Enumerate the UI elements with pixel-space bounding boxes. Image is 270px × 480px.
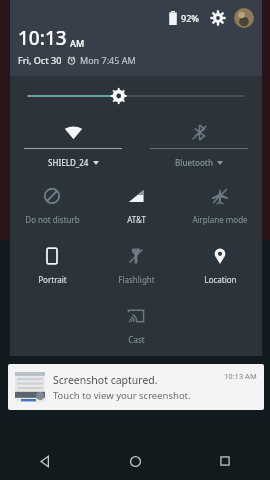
- button[interactable]: Back: [0, 442, 90, 480]
- staticText: Cast: [128, 334, 145, 345]
- button[interactable]: User profile: [234, 8, 254, 28]
- button[interactable]: Brightness: [10, 76, 262, 116]
- staticText: Mon 7:45 AM: [80, 54, 136, 66]
- button[interactable]: Recent apps: [180, 442, 270, 480]
- button[interactable]: Location: [178, 236, 262, 296]
- button[interactable]: AT&T: [94, 176, 178, 236]
- staticText: Do not disturb: [25, 214, 80, 225]
- staticText: Bluetooth: [175, 157, 213, 168]
- staticText: Touch to view your screenshot.: [53, 389, 191, 402]
- button[interactable]: Flashlight: [94, 236, 178, 296]
- button[interactable]: Home: [90, 442, 180, 480]
- button[interactable]: Screenshot captured.: [8, 364, 264, 410]
- staticText: SHIELD_24: [48, 157, 89, 168]
- staticText: 10:13 AM: [224, 371, 257, 381]
- staticText: 10:13: [18, 25, 67, 51]
- staticText: Flashlight: [118, 274, 155, 285]
- button[interactable]: Cast: [94, 296, 178, 352]
- staticText: Screenshot captured.: [53, 373, 158, 387]
- staticText: Portrait: [38, 274, 67, 285]
- staticText: Location: [204, 274, 237, 285]
- button[interactable]: Bluetooth: [136, 116, 262, 176]
- staticText: Fri, Oct 30: [18, 54, 62, 66]
- staticText: AT&T: [127, 214, 146, 225]
- button[interactable]: Settings: [208, 8, 228, 28]
- staticText: 92%: [181, 12, 199, 24]
- button[interactable]: Portrait: [10, 236, 94, 296]
- staticText: Airplane mode: [192, 214, 248, 225]
- button[interactable]: SHIELD_24: [10, 116, 136, 176]
- button[interactable]: Do not disturb: [10, 176, 94, 236]
- staticText: AM: [70, 37, 85, 49]
- button[interactable]: Airplane mode: [178, 176, 262, 236]
